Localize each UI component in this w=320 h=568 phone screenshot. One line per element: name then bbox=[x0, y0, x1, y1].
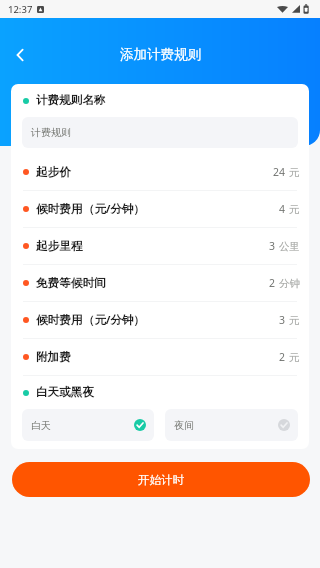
staticText: （元/分钟） bbox=[83, 201, 145, 217]
staticText: 计费规则名称 bbox=[36, 93, 106, 108]
staticText: 白天或黑夜 bbox=[36, 385, 94, 400]
staticText: 附加费 bbox=[36, 350, 71, 365]
staticText: （元/分钟） bbox=[83, 312, 145, 328]
staticText: 公里 bbox=[279, 240, 300, 253]
button[interactable]: 候时费用 bbox=[11, 302, 309, 338]
staticText: 元 bbox=[289, 314, 300, 327]
staticText: 元 bbox=[289, 351, 300, 364]
button[interactable]: 计费规则 bbox=[22, 117, 298, 148]
staticText: 起步里程 bbox=[36, 239, 83, 254]
button[interactable]: 附加费 bbox=[11, 339, 309, 375]
staticText: 元 bbox=[289, 166, 300, 179]
staticText: 分钟 bbox=[279, 277, 300, 290]
button[interactable]: 夜间 bbox=[165, 409, 298, 441]
staticText: 4 bbox=[279, 202, 286, 216]
staticText: 3 bbox=[269, 239, 276, 253]
button[interactable]: 开始计时 bbox=[12, 462, 310, 497]
staticText: 候时费用 bbox=[36, 313, 83, 328]
staticText: 白天 bbox=[31, 419, 51, 432]
staticText: 2 bbox=[279, 350, 286, 364]
staticText: 候时费用 bbox=[36, 202, 83, 217]
button[interactable]: 免费等候时间 bbox=[11, 265, 309, 301]
button[interactable]: 起步价 bbox=[11, 154, 309, 190]
staticText: 添加计费规则 bbox=[120, 46, 201, 63]
button[interactable]: Back bbox=[0, 35, 40, 75]
button[interactable]: 白天 bbox=[22, 409, 154, 441]
staticText: 3 bbox=[279, 313, 286, 327]
staticText: 开始计时 bbox=[138, 473, 184, 487]
staticText: 起步价 bbox=[36, 165, 71, 180]
staticText: 12:37 bbox=[8, 3, 33, 16]
button[interactable]: 起步里程 bbox=[11, 228, 309, 264]
staticText: 夜间 bbox=[174, 419, 194, 432]
button[interactable]: 候时费用 bbox=[11, 191, 309, 227]
staticText: 24 bbox=[273, 165, 286, 179]
staticText: 2 bbox=[269, 276, 276, 290]
staticText: 元 bbox=[289, 203, 300, 216]
staticText: 免费等候时间 bbox=[36, 276, 106, 291]
staticText: 计费规则 bbox=[31, 126, 71, 139]
